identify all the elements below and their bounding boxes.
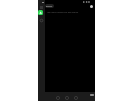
staticText: Recent <box>46 5 53 8</box>
button[interactable]: Home <box>64 95 69 100</box>
button[interactable]: Browse <box>39 5 43 9</box>
button[interactable]: Back <box>55 95 60 100</box>
staticText: You haven't opened any files recently <box>47 11 79 13</box>
button[interactable]: Recent apps <box>73 95 78 100</box>
button[interactable]: Recent <box>45 4 54 8</box>
button[interactable]: Account <box>90 5 93 8</box>
button[interactable]: Shared <box>39 18 43 22</box>
button[interactable]: Files <box>38 10 43 15</box>
